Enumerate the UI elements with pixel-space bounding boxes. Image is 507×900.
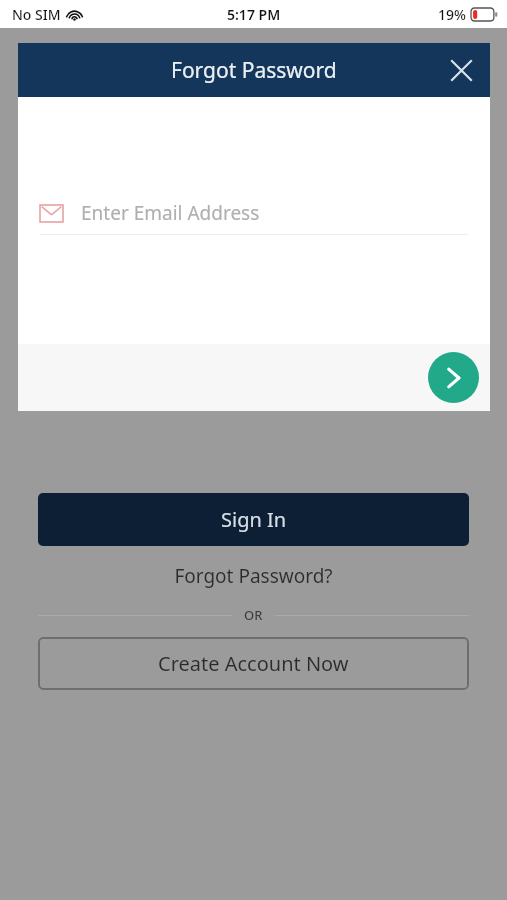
button[interactable]: Sign In bbox=[38, 493, 469, 546]
staticText: 19% bbox=[438, 5, 466, 24]
staticText: Forgot Password? bbox=[174, 563, 333, 589]
button[interactable]: Enter Email Address bbox=[40, 192, 468, 234]
button[interactable]: Create Account Now bbox=[38, 637, 469, 690]
staticText: No SIM bbox=[12, 5, 61, 24]
button[interactable]: Close bbox=[439, 48, 483, 92]
staticText: Enter Email Address bbox=[81, 200, 260, 226]
staticText: Sign In bbox=[221, 506, 287, 533]
staticText: OR bbox=[244, 606, 263, 624]
staticText: 5:17 PM bbox=[227, 5, 281, 24]
button[interactable]: Submit bbox=[428, 352, 479, 403]
staticText: Create Account Now bbox=[158, 650, 349, 677]
staticText: Forgot Password bbox=[171, 56, 337, 85]
button[interactable]: Forgot Password? bbox=[38, 559, 469, 593]
